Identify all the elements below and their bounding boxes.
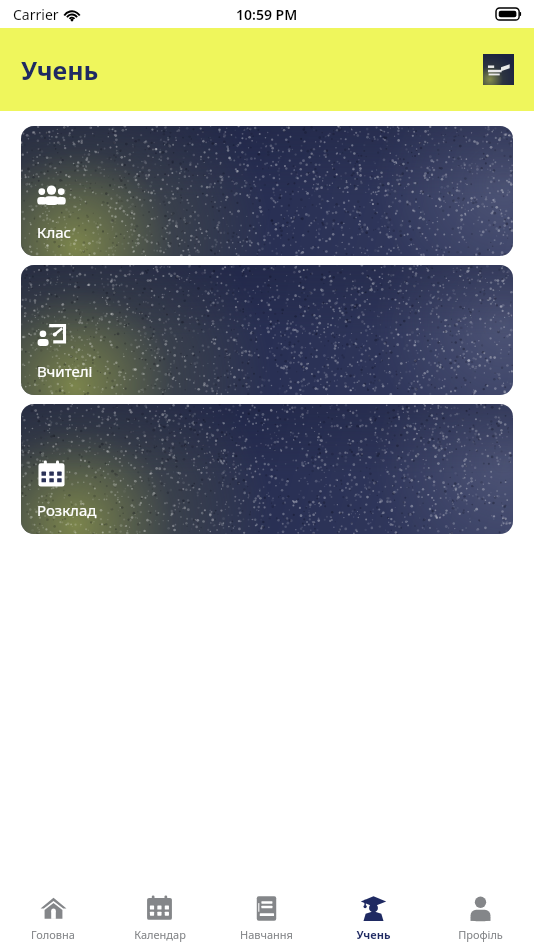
staticText: Учень	[356, 927, 391, 942]
button[interactable]: Профіль	[427, 878, 534, 950]
staticText: Навчання	[240, 927, 293, 942]
staticText: Вчителі	[37, 361, 93, 381]
staticText: 10:59 PM	[236, 5, 298, 24]
staticText: Профіль	[458, 927, 503, 942]
staticText: Учень	[21, 53, 99, 87]
button[interactable]: My School logo	[483, 54, 514, 85]
button[interactable]: Календар	[106, 878, 213, 950]
button[interactable]: Учень	[320, 878, 427, 950]
staticText: Головна	[31, 927, 75, 942]
button[interactable]: Розклад	[21, 404, 513, 534]
staticText: Календар	[134, 927, 186, 942]
button[interactable]: Навчання	[213, 878, 320, 950]
staticText: Клас	[37, 222, 71, 242]
staticText: Розклад	[37, 500, 97, 520]
staticText: Carrier	[13, 5, 59, 24]
button[interactable]: Клас	[21, 126, 513, 256]
button[interactable]: Головна	[0, 878, 106, 950]
button[interactable]: Вчителі	[21, 265, 513, 395]
